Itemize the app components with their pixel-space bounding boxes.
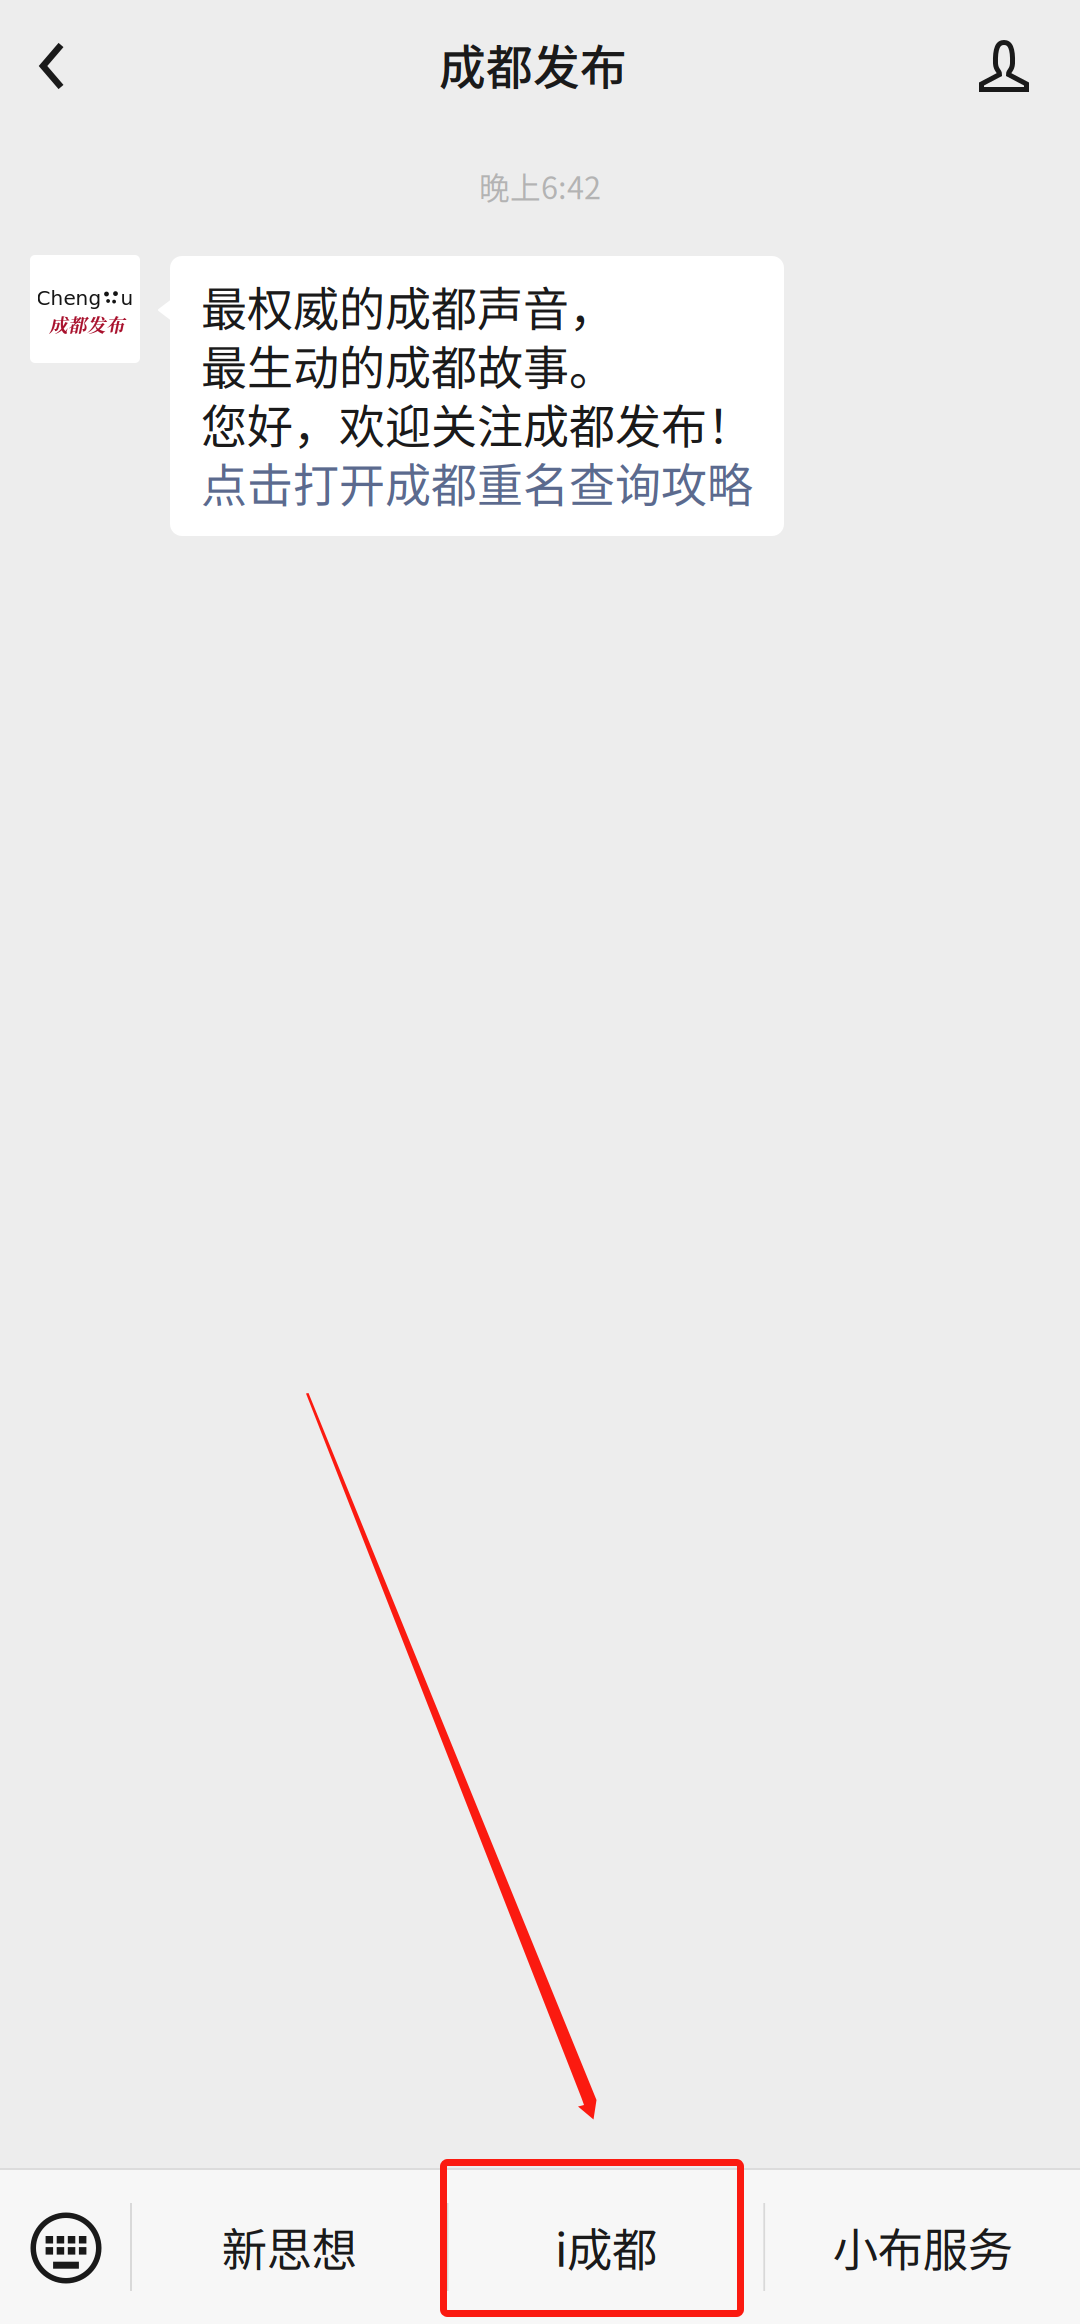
staticText: u [120, 286, 133, 310]
staticText: 新思想 [222, 2214, 357, 2280]
staticText: 成都发布 [49, 311, 125, 337]
staticText: 晚上6:42 [479, 164, 601, 208]
button[interactable]: 新思想 [132, 2170, 447, 2324]
staticText: 点击打开成都重名查询攻略 [201, 448, 753, 515]
button[interactable]: Account profile [952, 0, 1056, 132]
staticText: 您好，欢迎关注成都发布！ [201, 390, 753, 456]
button[interactable]: 小布服务 [765, 2170, 1080, 2324]
staticText: Cheng [36, 286, 101, 310]
button[interactable]: i成都 [449, 2170, 763, 2324]
staticText: 成都发布 [439, 30, 627, 98]
staticText: 最生动的成都故事。 [201, 331, 615, 397]
staticText: 最权威的成都声音， [201, 272, 615, 339]
button[interactable]: Keyboard [0, 2170, 130, 2324]
button[interactable]: Back [0, 0, 104, 132]
staticText: i成都 [555, 2214, 657, 2280]
staticText: 小布服务 [833, 2214, 1013, 2280]
